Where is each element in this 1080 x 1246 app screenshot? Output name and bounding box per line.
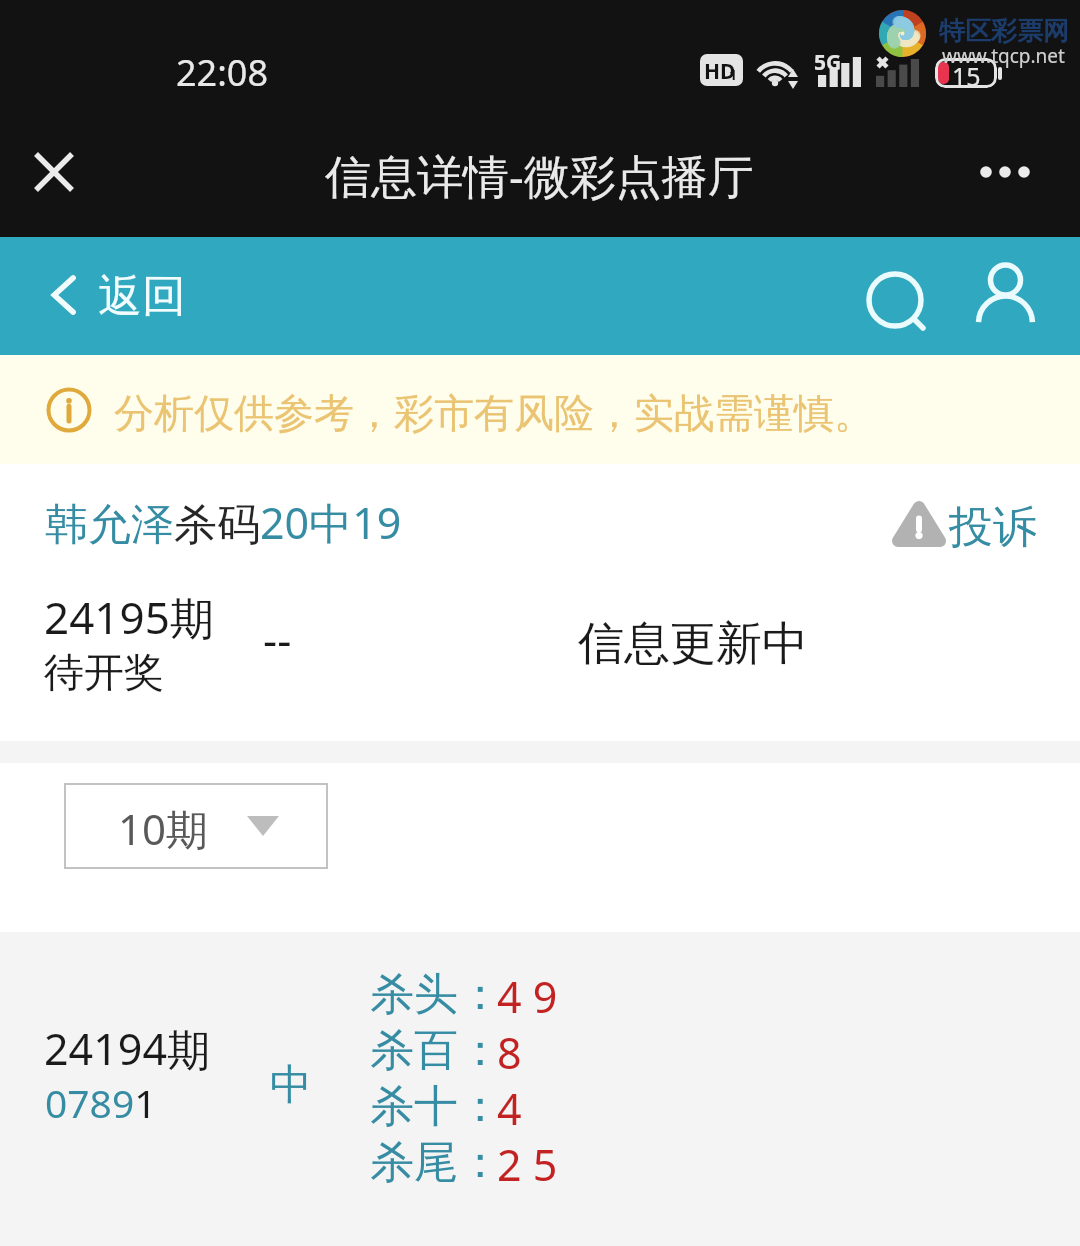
staticText: 5G	[814, 48, 842, 77]
button[interactable]: Close	[18, 136, 90, 208]
button[interactable]: More options	[960, 142, 1050, 202]
button[interactable]: 24194期	[0, 932, 1080, 1246]
staticText: 待开奖	[44, 647, 164, 697]
button[interactable]: 投诉	[885, 494, 1041, 556]
staticText: 投诉	[949, 500, 1037, 555]
staticText: 24194期	[44, 1019, 210, 1078]
staticText: 15	[952, 59, 981, 88]
staticText: 10期	[118, 800, 209, 857]
staticText: 返回	[98, 269, 186, 324]
button[interactable]: Search	[855, 255, 941, 341]
staticText: 信息更新中	[578, 615, 808, 673]
staticText: 杀百：	[370, 1023, 502, 1078]
button[interactable]: Account	[968, 255, 1054, 341]
staticText: 分析仅供参考，彩市有风险，实战需谨慎。	[114, 388, 874, 438]
staticText: 4 9	[497, 967, 558, 1026]
staticText: 24195期	[44, 587, 214, 647]
staticText: 2 5	[497, 1135, 558, 1194]
staticText: 信息详情-微彩点播厅	[325, 144, 754, 207]
staticText: 1	[729, 65, 738, 84]
staticText: www.tqcp.net	[942, 43, 1065, 69]
staticText: 韩允泽杀码20中19	[45, 493, 402, 552]
staticText: 杀头：	[370, 967, 502, 1022]
staticText: HD	[704, 57, 736, 86]
staticText: 4	[497, 1079, 522, 1138]
staticText: --	[263, 609, 292, 669]
staticText: 22:08	[176, 48, 269, 97]
staticText: 杀尾：	[370, 1135, 502, 1190]
staticText: 07891	[45, 1076, 157, 1129]
staticText: 8	[497, 1023, 522, 1082]
staticText: 特区彩票网	[939, 15, 1069, 48]
button[interactable]: 返回	[30, 247, 200, 345]
staticText: 中	[270, 1059, 312, 1112]
button[interactable]: 10期	[64, 783, 328, 869]
staticText: 杀十：	[370, 1079, 502, 1134]
